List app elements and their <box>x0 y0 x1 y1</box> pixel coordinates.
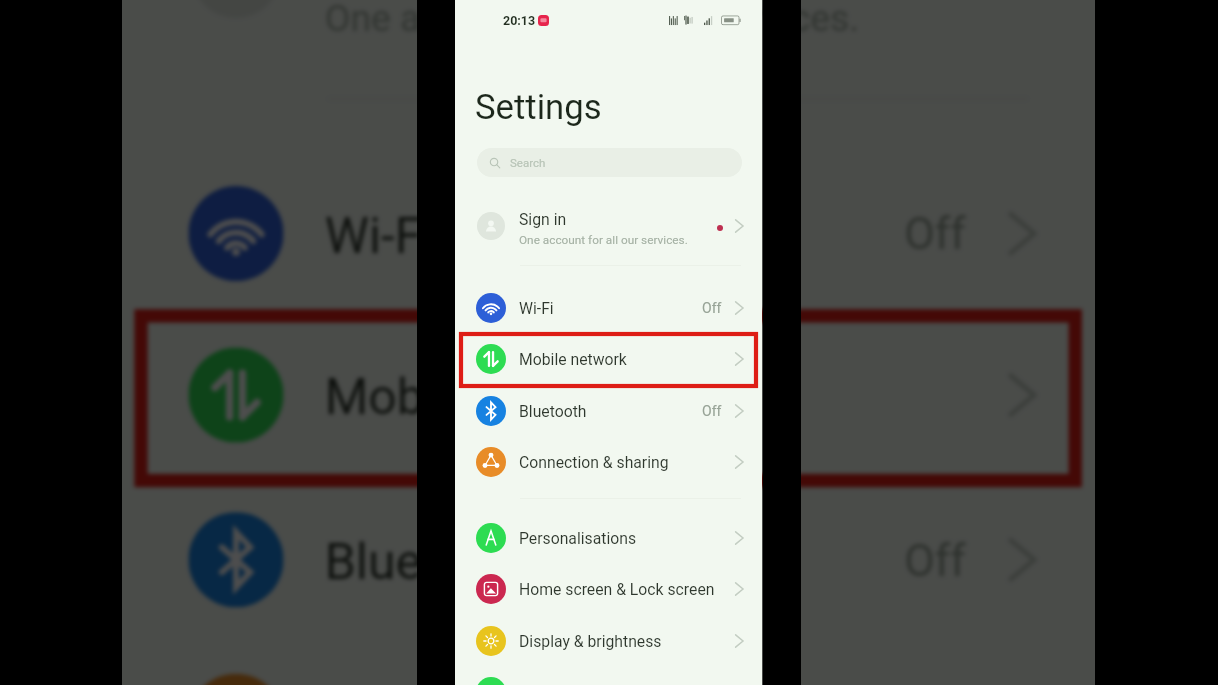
button[interactable]: Mobile network icon <box>122 313 1094 477</box>
button[interactable]: Sign in <box>122 0 1094 62</box>
button[interactable]: Search <box>477 148 742 177</box>
button[interactable]: Display & brightness icon <box>455 615 762 667</box>
other: Personalisations icon <box>476 523 506 553</box>
staticText: Mobile network <box>519 350 627 368</box>
staticText: Home screen & Lock screen <box>519 580 715 598</box>
other: Mobile network icon <box>188 347 283 442</box>
staticText: Bluetooth <box>325 531 540 588</box>
other: Mobile network icon <box>476 344 506 374</box>
staticText: Sign in <box>519 210 567 228</box>
button[interactable]: Connection & sharing icon <box>122 639 1094 685</box>
staticText: Off <box>904 534 967 585</box>
other: Sound & vibration icon <box>476 677 506 685</box>
button[interactable]: Wi-Fi icon <box>122 151 1094 316</box>
staticText: Mobile network <box>325 367 667 424</box>
button[interactable]: Bluetooth icon <box>455 385 762 437</box>
button[interactable]: Sound & vibration icon <box>455 666 762 685</box>
staticText: Off <box>904 208 967 259</box>
other: Display & brightness icon <box>476 626 506 656</box>
staticText: 20:13 <box>503 13 536 28</box>
staticText: One account for all our services. <box>325 0 860 40</box>
staticText: One account for all our services. <box>519 233 688 247</box>
other: Home screen & Lock screen icon <box>476 574 506 604</box>
staticText: Wi-Fi <box>519 299 554 317</box>
staticText: Settings <box>475 87 602 128</box>
other: Wi-Fi icon <box>188 186 283 281</box>
staticText: Off <box>702 300 722 316</box>
staticText: Off <box>702 403 722 419</box>
button[interactable]: Mobile network icon <box>455 333 762 385</box>
button[interactable]: Sign in <box>455 198 762 254</box>
button[interactable]: Personalisations icon <box>455 512 762 564</box>
staticText: Search <box>510 156 546 169</box>
staticText: Connection & sharing <box>519 453 669 471</box>
other: Connection & sharing icon <box>476 447 506 477</box>
button[interactable]: Connection & sharing icon <box>455 436 762 488</box>
staticText: Personalisations <box>519 529 637 547</box>
other: Bluetooth icon <box>476 396 506 426</box>
button[interactable]: Wi-Fi icon <box>455 282 762 334</box>
other: Connection & sharing icon <box>188 674 283 685</box>
button[interactable]: Bluetooth icon <box>122 477 1094 642</box>
button[interactable]: Home screen & Lock screen icon <box>455 563 762 615</box>
staticText: Bluetooth <box>519 402 587 420</box>
other: Bluetooth icon <box>188 512 283 607</box>
staticText: Display & brightness <box>519 632 662 650</box>
other: Wi-Fi icon <box>476 293 506 323</box>
staticText: Wi-Fi <box>325 205 435 262</box>
